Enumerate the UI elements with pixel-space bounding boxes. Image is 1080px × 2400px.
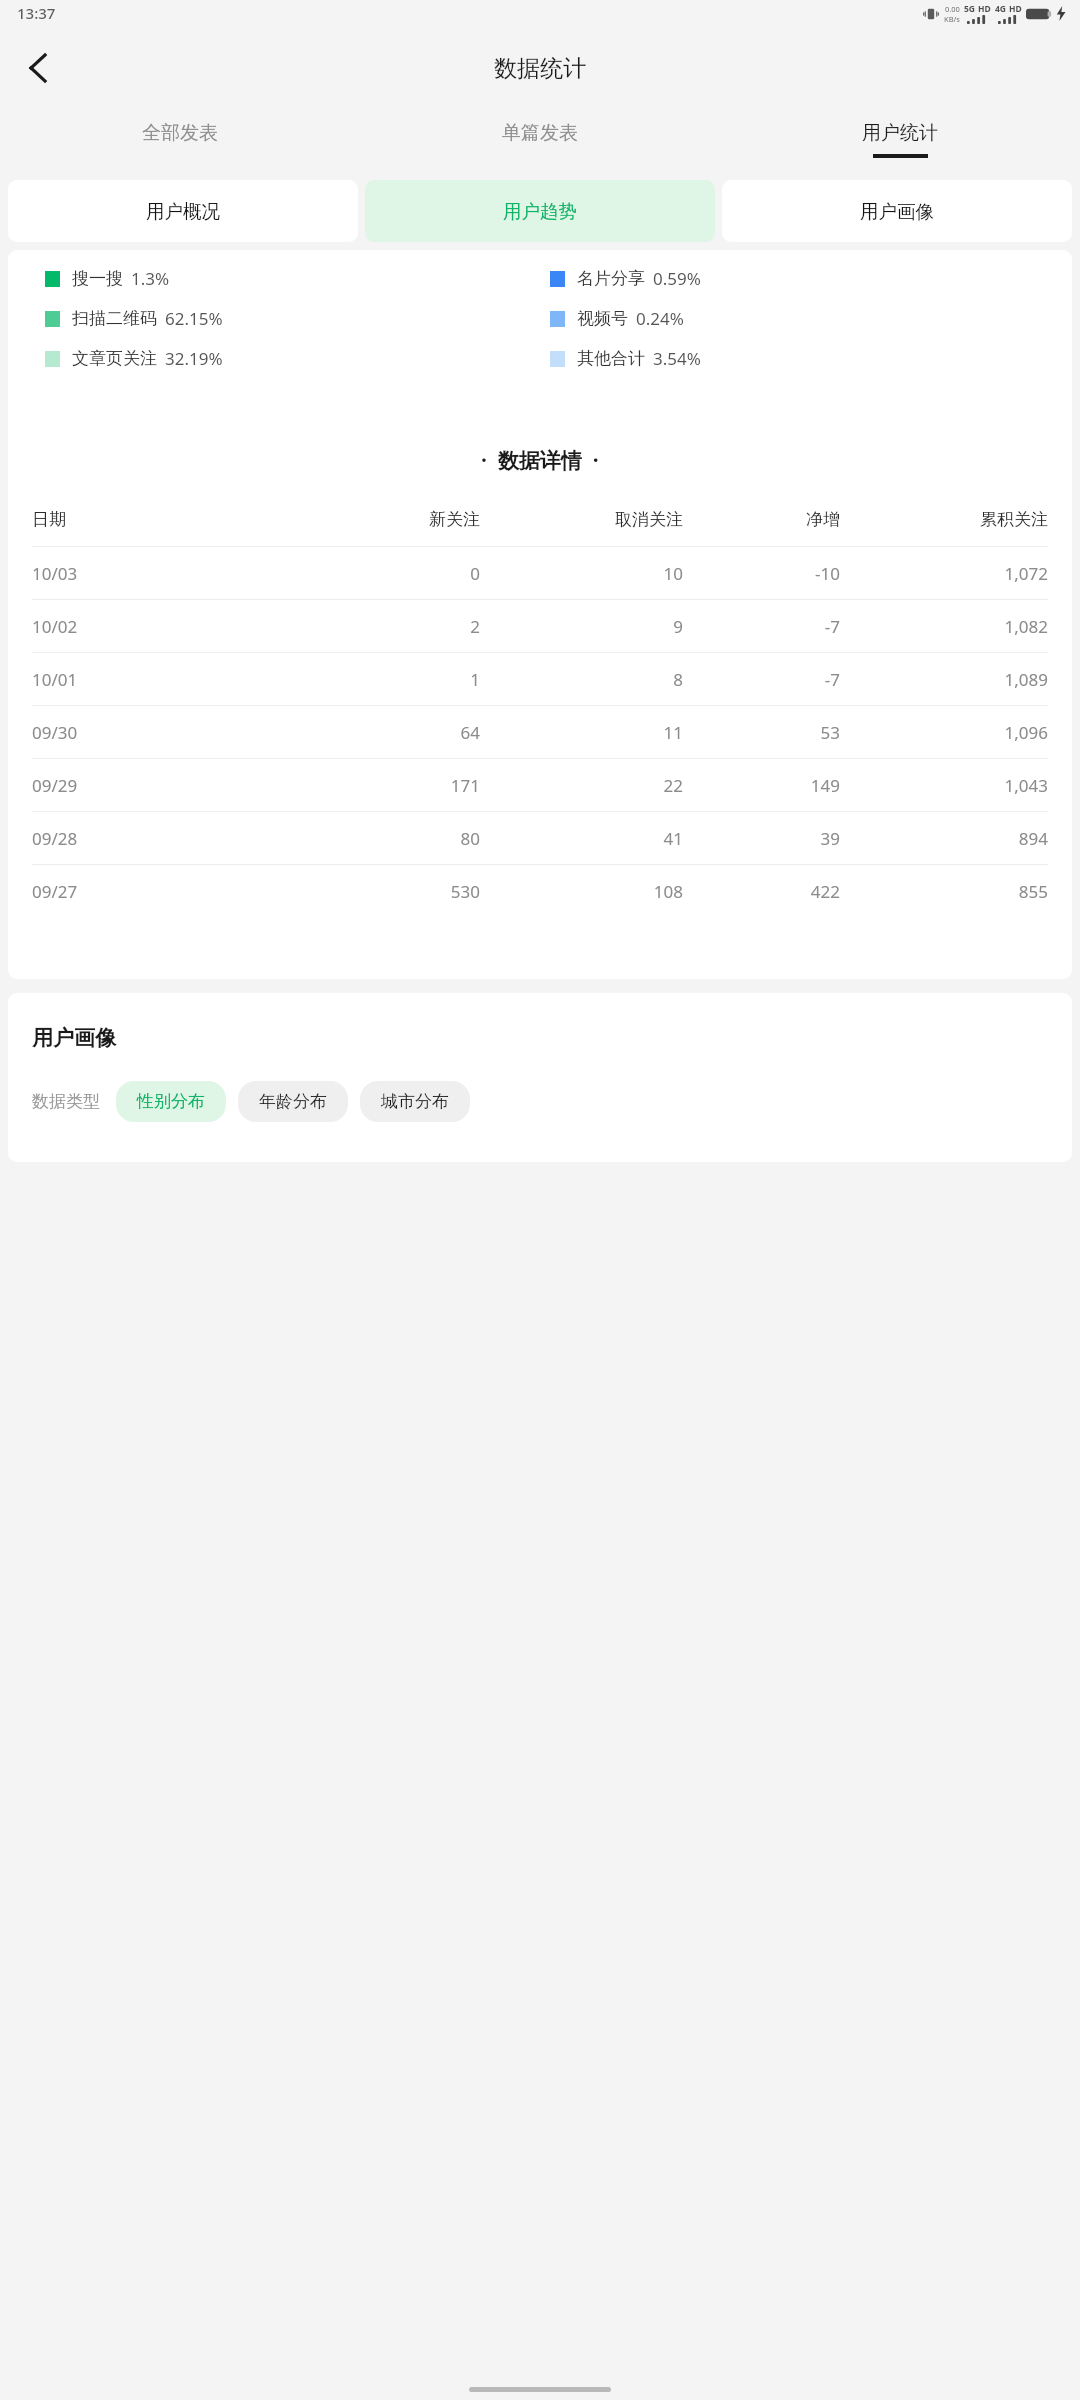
- staticText: 32.19%: [165, 347, 223, 370]
- staticText: -10: [683, 562, 840, 585]
- staticText: 扫描二维码: [72, 308, 157, 329]
- staticText: 5G: [964, 3, 976, 15]
- staticText: 0.00: [945, 4, 960, 14]
- staticText: 1,082: [840, 615, 1048, 638]
- staticText: 422: [683, 880, 840, 903]
- staticText: 9: [480, 615, 683, 638]
- staticText: 41: [480, 827, 683, 850]
- button[interactable]: 10/03: [8, 547, 1072, 599]
- staticText: 22: [480, 774, 683, 797]
- staticText: 108: [480, 880, 683, 903]
- staticText: 80: [272, 827, 480, 850]
- staticText: 09/27: [32, 880, 272, 903]
- button[interactable]: 用户画像: [722, 180, 1072, 242]
- staticText: 净增: [683, 509, 840, 530]
- button[interactable]: 全部发表: [0, 110, 360, 168]
- staticText: 0: [272, 562, 480, 585]
- button[interactable]: 性别分布: [116, 1081, 226, 1122]
- button[interactable]: 10/02: [8, 600, 1072, 652]
- button[interactable]: Back: [8, 38, 68, 98]
- button[interactable]: 09/30: [8, 706, 1072, 758]
- staticText: 09/29: [32, 774, 272, 797]
- staticText: 39: [683, 827, 840, 850]
- staticText: 10/02: [32, 615, 272, 638]
- staticText: 文章页关注: [72, 348, 157, 369]
- staticText: 数据统计: [494, 54, 586, 83]
- staticText: 1: [272, 668, 480, 691]
- staticText: 视频号: [577, 308, 628, 329]
- staticText: 用户统计: [862, 121, 938, 145]
- staticText: HD: [978, 3, 991, 15]
- button[interactable]: 09/28: [8, 812, 1072, 864]
- staticText: 其他合计: [577, 348, 645, 369]
- staticText: 3.54%: [653, 347, 701, 370]
- staticText: 171: [272, 774, 480, 797]
- button[interactable]: 年龄分布: [238, 1081, 348, 1122]
- staticText: 日期: [32, 509, 272, 530]
- staticText: 1,089: [840, 668, 1048, 691]
- staticText: 性别分布: [137, 1091, 205, 1112]
- button[interactable]: 用户概况: [8, 180, 358, 242]
- button[interactable]: 单篇发表: [360, 110, 720, 168]
- staticText: 用户画像: [32, 1025, 116, 1051]
- staticText: 单篇发表: [502, 121, 578, 145]
- staticText: 1,043: [840, 774, 1048, 797]
- button[interactable]: 09/27: [8, 865, 1072, 917]
- button[interactable]: 09/29: [8, 759, 1072, 811]
- staticText: 11: [480, 721, 683, 744]
- staticText: 530: [272, 880, 480, 903]
- staticText: 53: [683, 721, 840, 744]
- staticText: · 数据详情 ·: [481, 446, 599, 475]
- staticText: 10: [480, 562, 683, 585]
- staticText: 用户概况: [146, 200, 220, 223]
- staticText: -7: [683, 615, 840, 638]
- staticText: 10/03: [32, 562, 272, 585]
- staticText: 累积关注: [840, 509, 1048, 530]
- staticText: 149: [683, 774, 840, 797]
- staticText: 855: [840, 880, 1048, 903]
- button[interactable]: 用户统计: [720, 110, 1080, 168]
- staticText: 城市分布: [381, 1091, 449, 1112]
- staticText: 894: [840, 827, 1048, 850]
- staticText: 用户画像: [860, 200, 934, 223]
- staticText: 10/01: [32, 668, 272, 691]
- staticText: 全部发表: [142, 121, 218, 145]
- staticText: 09/28: [32, 827, 272, 850]
- staticText: 1,072: [840, 562, 1048, 585]
- staticText: 09/30: [32, 721, 272, 744]
- staticText: 年龄分布: [259, 1091, 327, 1112]
- staticText: 0.59%: [653, 267, 701, 290]
- staticText: 2: [272, 615, 480, 638]
- staticText: 数据类型: [32, 1091, 100, 1112]
- staticText: 13:37: [17, 3, 56, 23]
- button[interactable]: 城市分布: [360, 1081, 470, 1122]
- button[interactable]: 10/01: [8, 653, 1072, 705]
- staticText: HD: [1009, 3, 1022, 15]
- staticText: 64: [272, 721, 480, 744]
- staticText: 0.24%: [636, 307, 684, 330]
- staticText: 1,096: [840, 721, 1048, 744]
- staticText: 1.3%: [131, 267, 170, 290]
- staticText: 搜一搜: [72, 268, 123, 289]
- staticText: 用户趋势: [503, 200, 577, 223]
- staticText: 取消关注: [480, 509, 683, 530]
- staticText: -7: [683, 668, 840, 691]
- staticText: 8: [480, 668, 683, 691]
- staticText: 名片分享: [577, 268, 645, 289]
- staticText: 新关注: [272, 509, 480, 530]
- staticText: 62.15%: [165, 307, 223, 330]
- button[interactable]: 用户趋势: [365, 180, 715, 242]
- staticText: 4G: [995, 3, 1007, 15]
- staticText: KB/s: [944, 14, 960, 24]
